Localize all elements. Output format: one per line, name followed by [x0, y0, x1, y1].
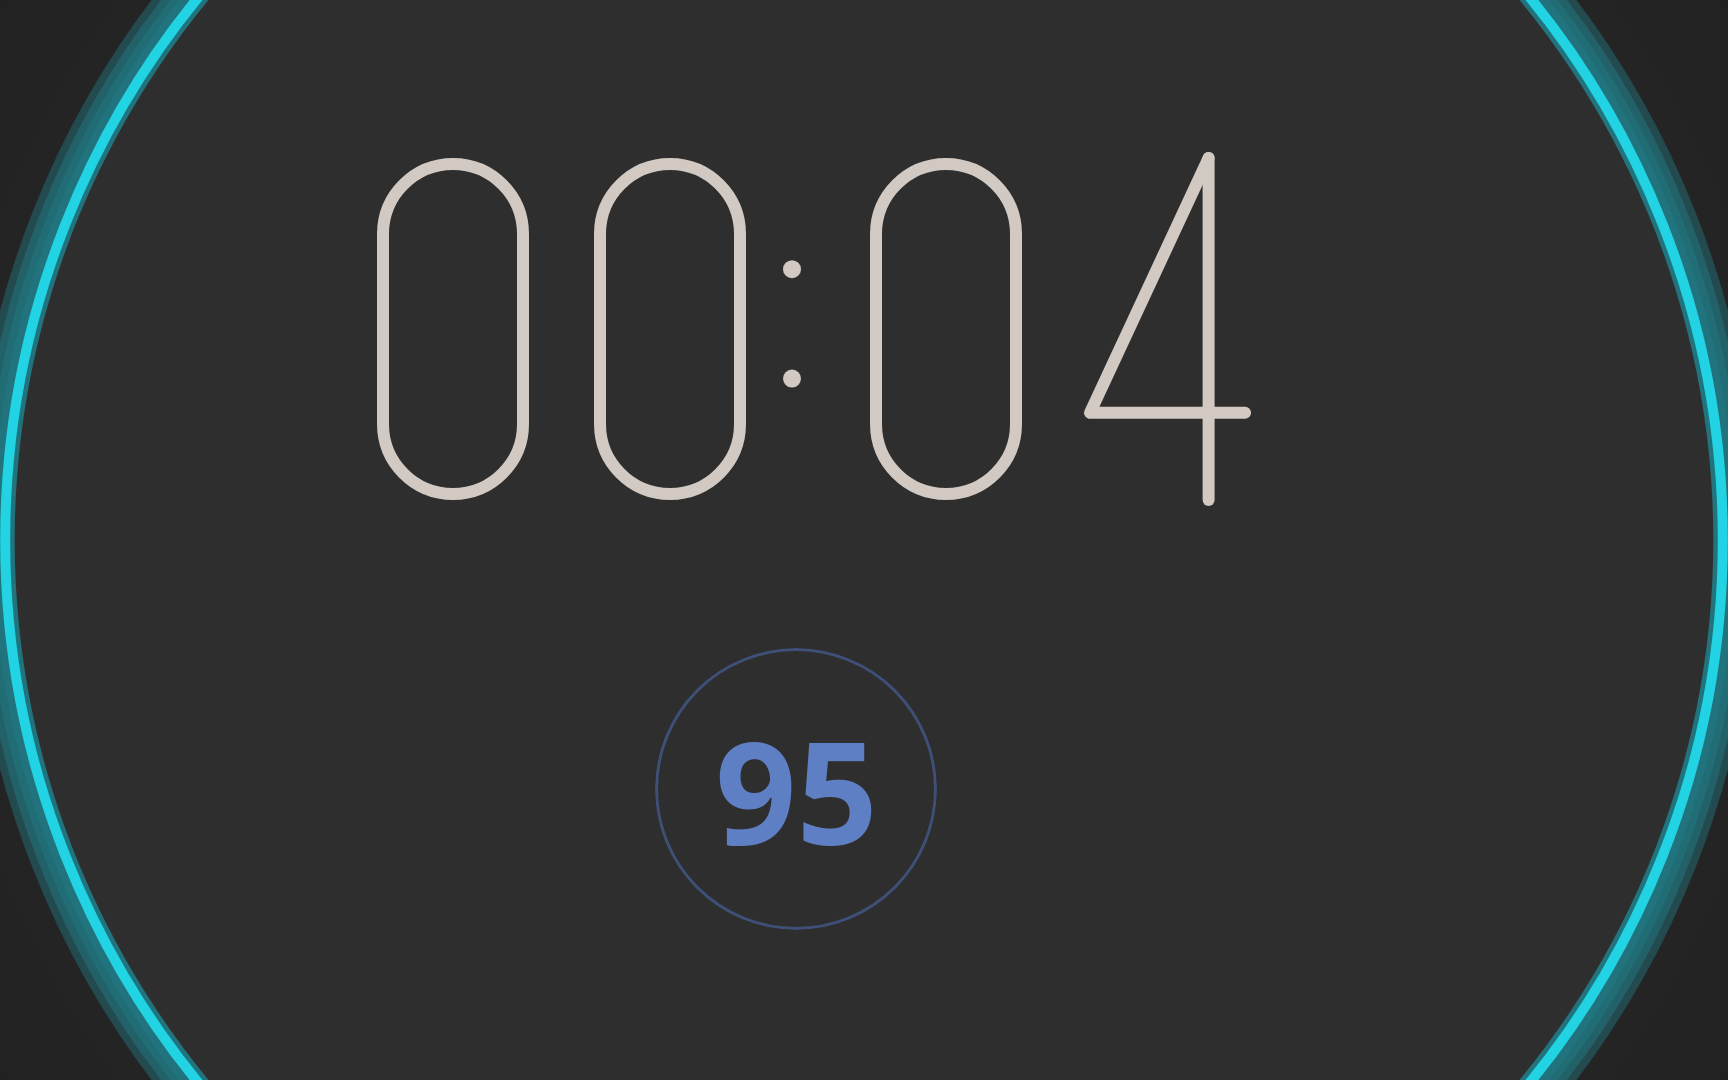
button[interactable]: Heart rate 95: [0, 0, 1728, 1080]
staticText: 95: [715, 693, 878, 886]
button[interactable]: Heart rate 95: [655, 648, 937, 930]
